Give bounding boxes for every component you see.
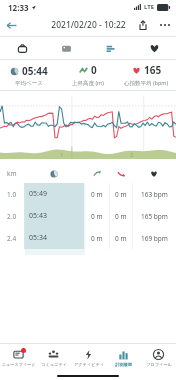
staticText: 2 xyxy=(130,151,134,159)
staticText: 165 bpm xyxy=(141,212,168,221)
staticText: 2.4 xyxy=(7,234,17,243)
button[interactable]: コミュニティ xyxy=(36,344,71,371)
staticText: 上昇高度 (m) xyxy=(72,79,104,87)
button[interactable]: ニュースフィード xyxy=(0,344,36,371)
button[interactable]: Charts xyxy=(88,37,132,59)
button[interactable]: More options xyxy=(154,14,176,36)
button[interactable]: Share xyxy=(132,14,154,36)
button[interactable]: 165 xyxy=(117,60,176,90)
staticText: ニュースフィード xyxy=(1,362,36,367)
staticText: コミュニティ xyxy=(41,362,67,367)
button[interactable]: 05:44 xyxy=(0,60,58,90)
button[interactable]: 計測履歴 xyxy=(106,344,141,371)
staticText: 163 bpm xyxy=(141,190,168,199)
staticText: 0 xyxy=(91,63,97,77)
staticText: 1.0 xyxy=(7,190,17,199)
staticText: 12:33 xyxy=(8,2,29,13)
button[interactable]: アクティビティ xyxy=(71,344,106,371)
staticText: アクティビティ xyxy=(74,362,104,367)
staticText: 05:44 xyxy=(22,64,48,78)
button[interactable]: 2.0 xyxy=(0,205,176,227)
staticText: プロフィール xyxy=(146,362,172,367)
staticText: LTE xyxy=(144,3,155,11)
staticText: 平均ペース xyxy=(15,80,43,87)
button[interactable]: Activity summary xyxy=(0,37,44,59)
staticText: 165 xyxy=(144,63,162,77)
staticText: 1 xyxy=(60,151,64,159)
staticText: 05:49 xyxy=(29,189,47,199)
staticText: 0 m xyxy=(91,234,103,243)
staticText: 心拍数平均 (bpm) xyxy=(124,79,169,87)
button[interactable]: 2.4 xyxy=(0,227,176,249)
staticText: 05:34 xyxy=(29,233,47,243)
button[interactable]: 1.0 xyxy=(0,183,176,205)
button[interactable]: Favorite xyxy=(132,37,176,59)
staticText: 2021/02/20 - 10:22 xyxy=(51,19,126,31)
staticText: 2.0 xyxy=(7,212,17,221)
button[interactable]: 0 xyxy=(58,60,117,90)
staticText: 05:43 xyxy=(29,211,47,221)
button[interactable]: Back xyxy=(0,14,22,36)
staticText: 0 m xyxy=(115,234,127,243)
button[interactable]: Photos xyxy=(44,37,88,59)
staticText: 0 m xyxy=(91,212,103,221)
staticText: 0 m xyxy=(115,190,127,199)
staticText: 計測履歴 xyxy=(115,362,132,367)
staticText: 0 m xyxy=(91,190,103,199)
staticText: 169 bpm xyxy=(141,234,168,243)
staticText: km xyxy=(7,169,17,178)
button[interactable]: プロフィール xyxy=(141,344,176,371)
staticText: 0 m xyxy=(115,212,127,221)
